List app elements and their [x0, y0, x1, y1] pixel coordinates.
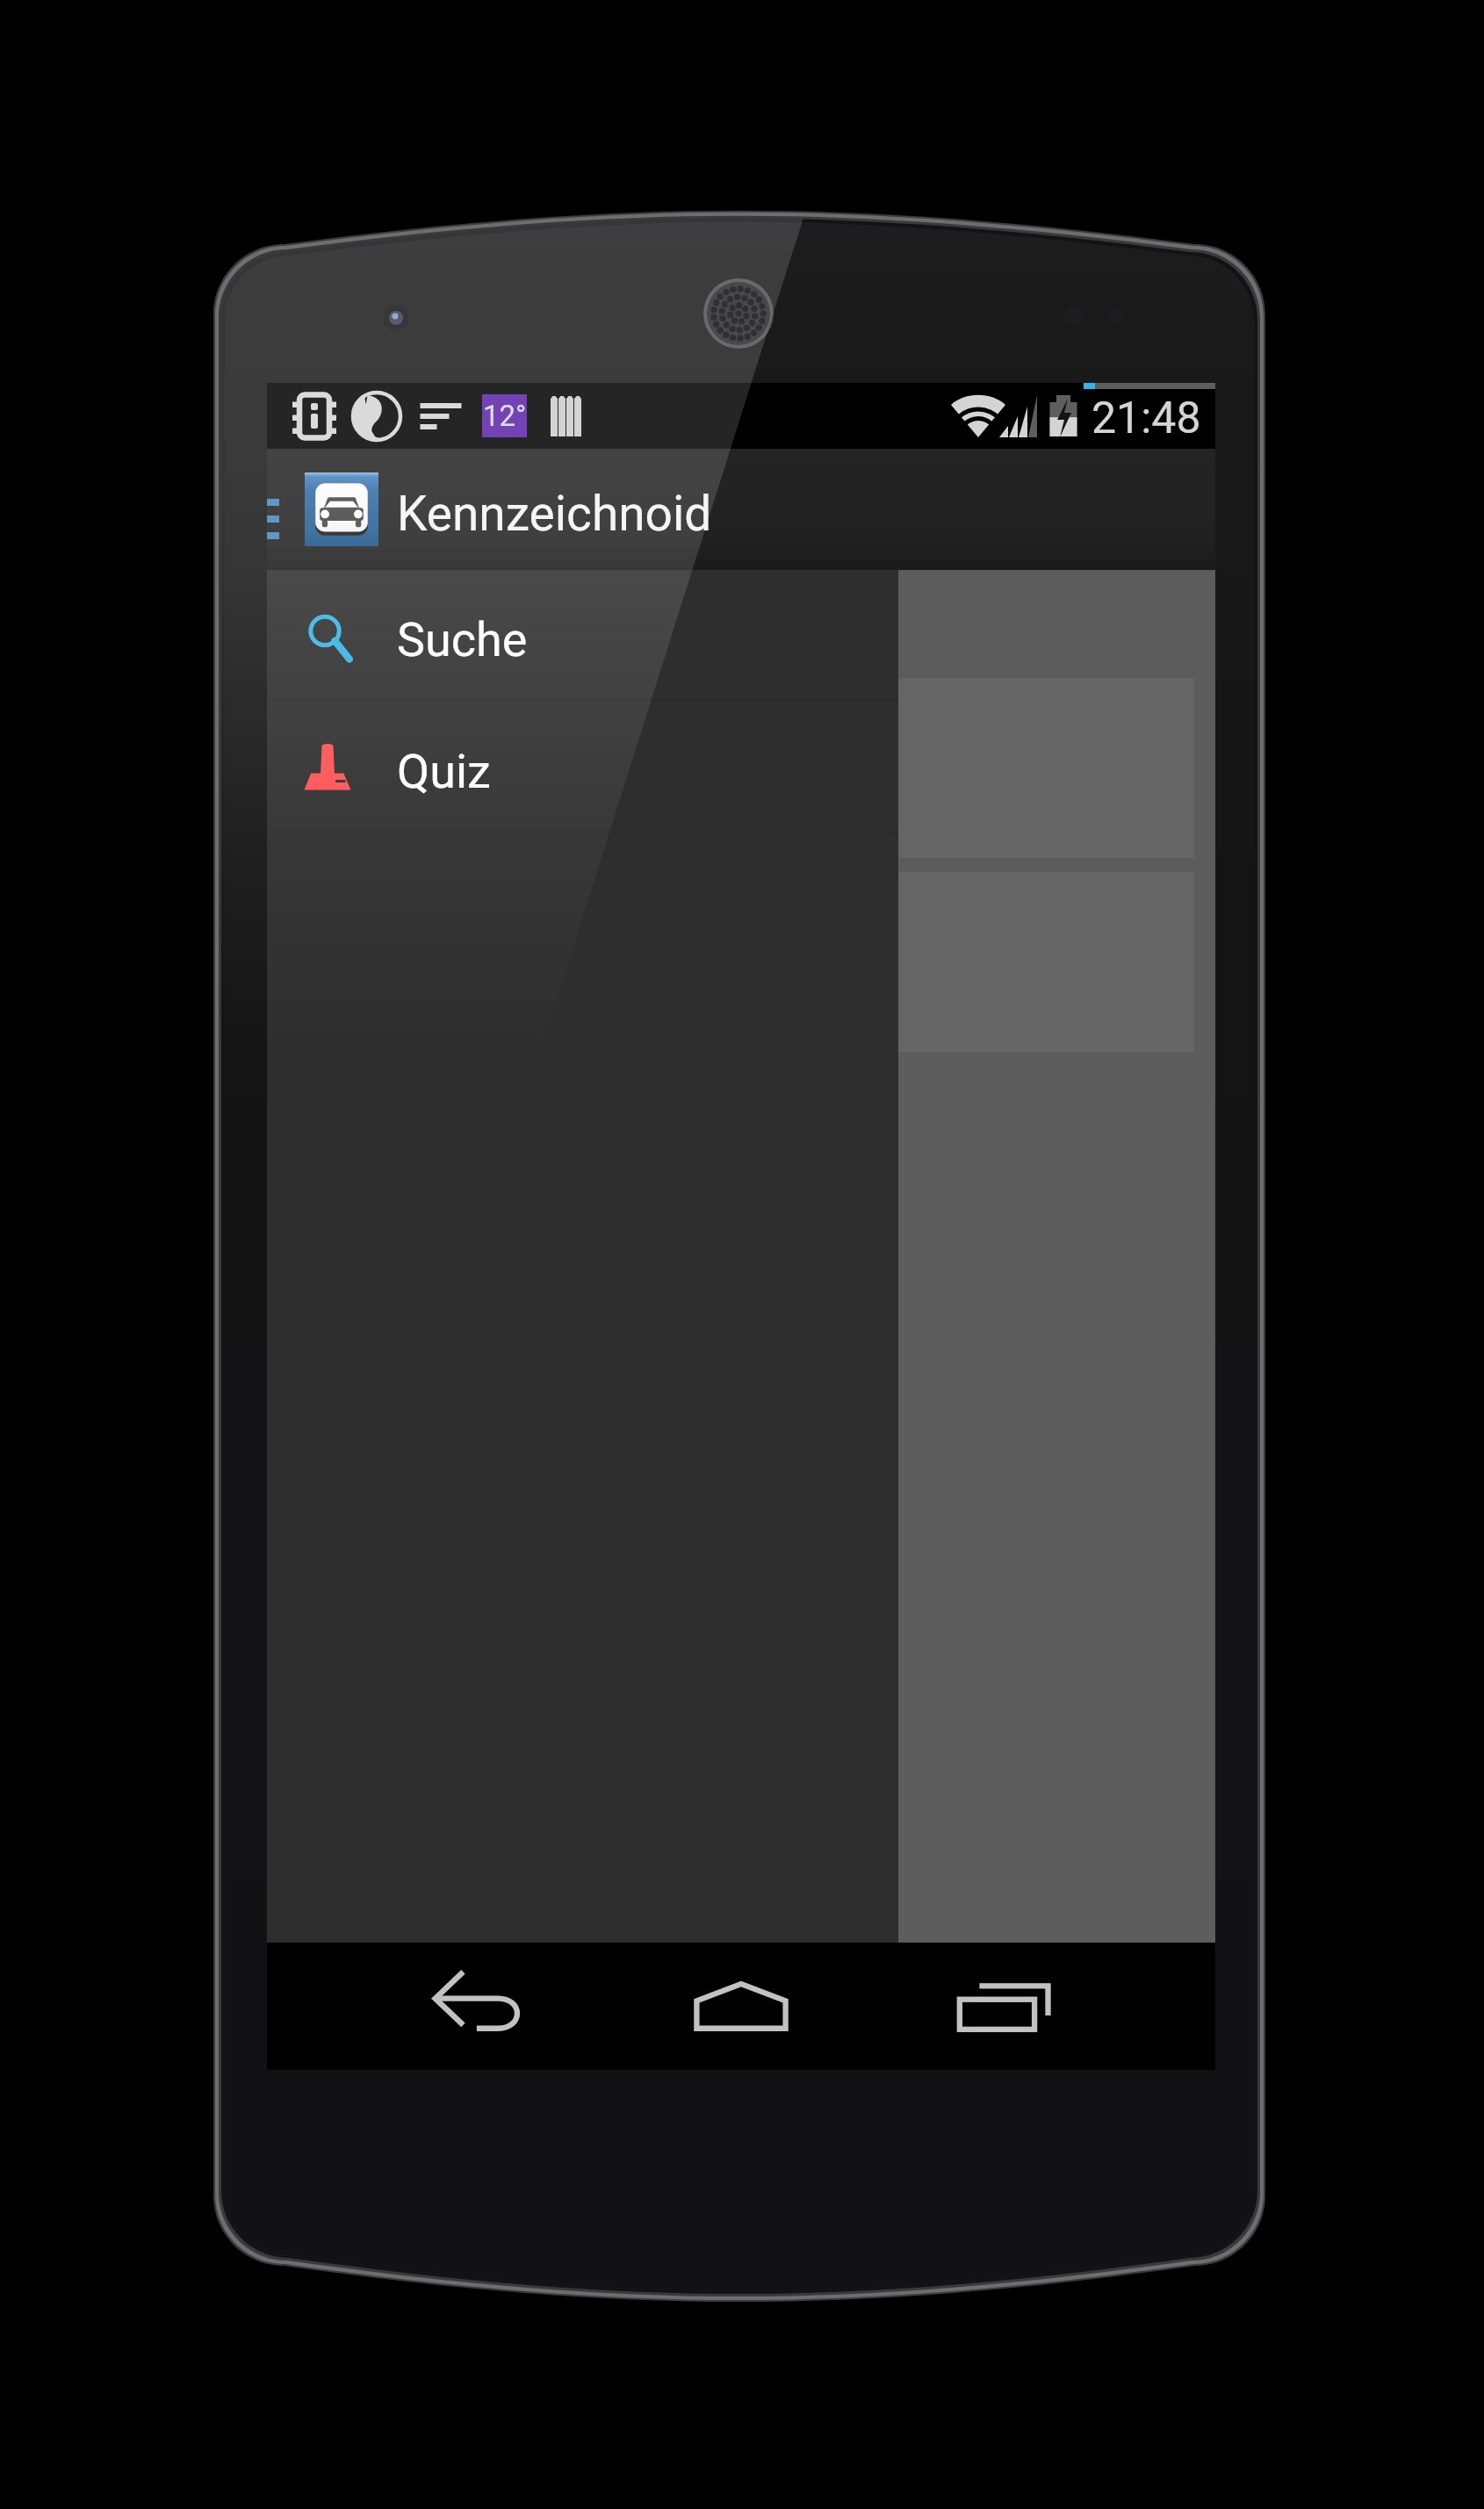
button[interactable]: Back	[346, 1943, 609, 2070]
button[interactable]: Home	[609, 1943, 873, 2070]
staticText: Suche	[397, 612, 528, 667]
staticText: Quiz	[397, 744, 491, 799]
button[interactable]: Kennzeichnoid, open navigation drawer	[267, 449, 712, 570]
staticText: Kennzeichnoid	[397, 486, 712, 542]
staticText: 21:48	[1091, 393, 1201, 444]
staticText: 12°	[483, 399, 527, 433]
button[interactable]: Quiz	[267, 702, 898, 831]
button[interactable]: Suche	[267, 570, 898, 699]
button[interactable]: Recent apps	[873, 1943, 1136, 2070]
